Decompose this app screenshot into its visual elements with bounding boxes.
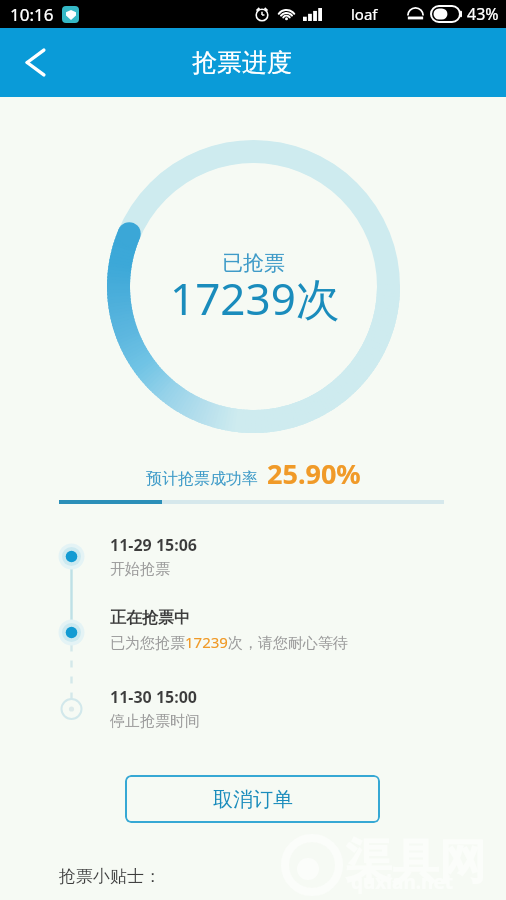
staticText: 43%: [467, 3, 499, 25]
staticText: 抢票进度: [192, 47, 292, 78]
staticText: 10:16: [10, 3, 54, 26]
staticText: 抢票小贴士：: [59, 866, 161, 887]
staticText: 取消订单: [213, 787, 293, 812]
staticText: 停止抢票时间: [110, 712, 200, 731]
staticText: 预计抢票成功率: [146, 469, 258, 489]
staticText: 已抢票: [222, 250, 285, 276]
staticText: 开始抢票: [110, 560, 170, 579]
staticText: 已为您抢票17239次，请您耐心等待: [110, 632, 348, 652]
staticText: loaf: [351, 4, 378, 24]
button[interactable]: Back: [8, 28, 63, 97]
staticText: 11-30 15:00: [110, 686, 197, 708]
staticText: 25.90%: [267, 455, 361, 492]
staticText: 17239次: [170, 268, 340, 328]
staticText: 11-29 15:06: [110, 534, 197, 556]
staticText: 正在抢票中: [110, 608, 190, 628]
button[interactable]: 取消订单: [125, 775, 380, 823]
